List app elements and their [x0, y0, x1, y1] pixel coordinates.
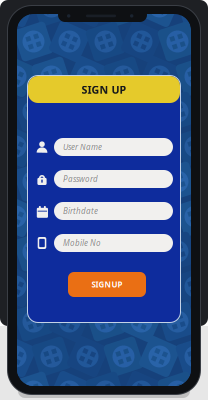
staticText: User Name	[63, 142, 102, 152]
button[interactable]: SIGNUP	[68, 272, 146, 297]
button[interactable]: Mobile No	[54, 234, 173, 252]
staticText: SIGN UP	[81, 82, 126, 97]
button[interactable]: Birthdate	[54, 202, 173, 220]
staticText: Birthdate	[63, 206, 98, 216]
staticText: Password	[63, 174, 98, 184]
button[interactable]: Password	[54, 170, 173, 188]
button[interactable]: User Name	[54, 138, 173, 156]
staticText: SIGNUP	[91, 279, 122, 290]
staticText: Mobile No	[63, 238, 101, 248]
